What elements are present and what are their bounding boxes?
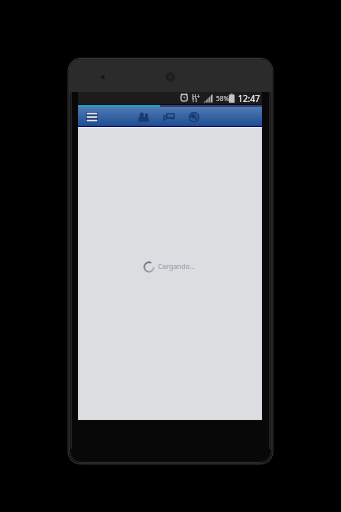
- button[interactable]: Chats: [158, 107, 180, 126]
- staticText: H+: [192, 92, 201, 100]
- staticText: 58%: [216, 94, 230, 103]
- button[interactable]: Web: [183, 107, 205, 126]
- button[interactable]: Contacts: [132, 107, 154, 126]
- button[interactable]: Menu: [82, 107, 102, 126]
- staticText: Cargando...: [158, 262, 196, 271]
- staticText: 12:47: [238, 93, 260, 105]
